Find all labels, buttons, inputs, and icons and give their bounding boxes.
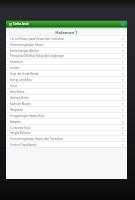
staticText: Konduktor [10, 60, 24, 64]
staticText: Keseimbangan Alamku [10, 49, 39, 53]
button[interactable]: Keseimbangan Alamku [6, 48, 127, 53]
button[interactable]: Gerhana Bulan [6, 95, 127, 100]
staticText: Pelestarian Makhluk Hidup dan Lingkungan [10, 54, 65, 58]
button[interactable]: Penggolongan Hewan Hijau [6, 113, 127, 118]
button[interactable]: Gaya dan Gerak Benda [6, 71, 127, 76]
button[interactable]: Sumber Daya Alamku [6, 142, 127, 147]
button[interactable]: Tumbuhan Hijau [6, 125, 127, 130]
staticText: Rangkaian [10, 108, 24, 112]
staticText: Perkembangbiakan Hewan dan Tumbuhan [10, 137, 64, 141]
button[interactable]: Surya [6, 83, 127, 88]
staticText: Isolator [10, 66, 20, 70]
staticText: Halaman 1 [55, 30, 78, 36]
button[interactable]: Open navigation menu [8, 22, 12, 26]
staticText: Bumi Bulan [10, 90, 25, 94]
button[interactable]: Pelestarian Makhluk Hidup dan Lingkungan [6, 54, 127, 58]
button[interactable]: Kalender Masehi [6, 101, 127, 106]
button[interactable]: Perkembangbiakan Hewan [6, 42, 127, 47]
button[interactable]: Rangka Manusia [6, 131, 127, 135]
button[interactable]: Isolator [6, 65, 127, 70]
button[interactable]: Account [120, 21, 126, 27]
button[interactable]: Perkembangbiakan Hewan dan Tumbuhan [6, 136, 127, 141]
staticText: Perkembangbiakan Hewan [10, 43, 44, 47]
staticText: Sumber Daya Alamku [10, 143, 37, 147]
staticText: Surya [10, 84, 18, 88]
staticText: Tumbuhan Hijau [10, 126, 31, 130]
button[interactable]: Bumi Bulan [6, 89, 127, 94]
staticText: Gerhana Bulan [10, 96, 29, 100]
staticText: Adaptasi [10, 120, 21, 124]
button[interactable]: Ciri-ciri Khusus pada Hewan dan Tumbuhan [6, 36, 127, 41]
staticText: Cerita Anak [13, 22, 29, 26]
staticText: Ciri-ciri Khusus pada Hewan dan Tumbuhan [10, 37, 65, 41]
button[interactable]: Adaptasi [6, 119, 127, 124]
button[interactable]: Rangkaian [6, 107, 127, 112]
staticText: Gaya dan Gerak Benda [10, 72, 39, 76]
button[interactable]: Konduktor [6, 59, 127, 64]
button[interactable]: Energi Listrik Kita [6, 77, 127, 82]
staticText: Kalender Masehi [10, 102, 31, 106]
staticText: Energi Listrik Kita [10, 78, 32, 82]
staticText: Penggolongan Hewan Hijau [10, 114, 45, 118]
staticText: Rangka Manusia [10, 131, 31, 135]
